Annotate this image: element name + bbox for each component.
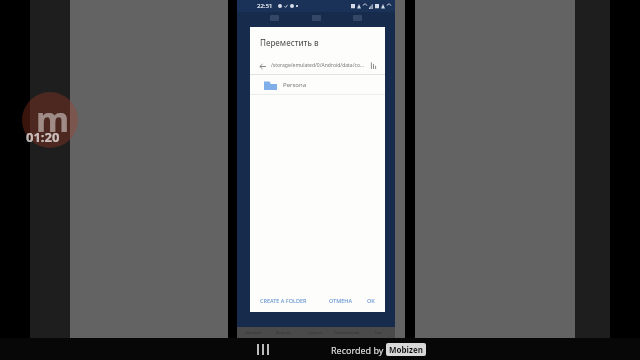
staticText: 01:20 xyxy=(26,128,60,146)
staticText: ОТМЕНА xyxy=(329,297,353,304)
staticText: Сделать xyxy=(308,330,322,335)
staticText: Mobizen xyxy=(389,344,423,355)
staticText: Закладки xyxy=(245,330,261,335)
button[interactable]: Persona xyxy=(250,75,385,94)
button[interactable]: Sort xyxy=(368,60,379,71)
button[interactable]: Произведений xyxy=(331,327,363,338)
staticText: Видение xyxy=(276,330,291,335)
staticText: m xyxy=(36,96,70,142)
staticText: /storage/emulated/0/Android/data/com.... xyxy=(271,62,365,69)
staticText: Ещё xyxy=(375,330,383,335)
button[interactable]: ОТМЕНА xyxy=(325,294,357,307)
staticText: CREATE A FOLDER xyxy=(260,297,307,304)
button[interactable]: CREATE A FOLDER xyxy=(256,294,311,307)
staticText: Переместить в xyxy=(260,37,319,48)
button[interactable]: OK xyxy=(363,294,379,307)
staticText: OK xyxy=(367,297,375,304)
staticText: Persona xyxy=(283,81,307,89)
staticText: 22:51 xyxy=(257,2,273,10)
button[interactable]: Back xyxy=(256,60,268,72)
staticText: Произведений xyxy=(334,330,360,335)
staticText: Recorded by xyxy=(331,344,386,356)
